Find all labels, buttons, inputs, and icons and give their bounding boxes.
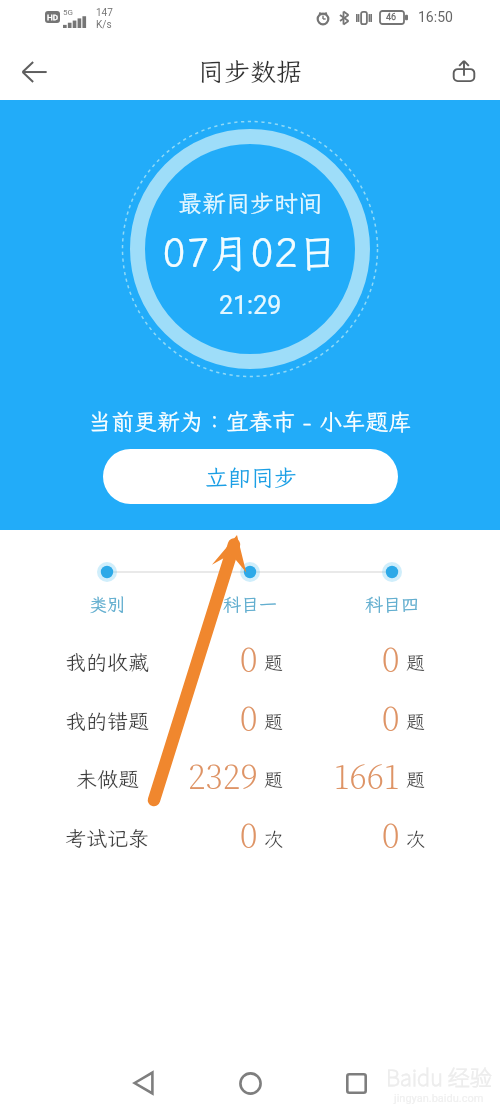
staticText: 同步数据 — [198, 54, 303, 88]
staticText: 2329 — [188, 752, 258, 798]
staticText: 当前更新为：宜春市 - 小车题库 — [88, 406, 412, 436]
staticText: 未做题 — [76, 765, 139, 793]
staticText: 类别 — [89, 592, 125, 616]
staticText: 我的错题 — [65, 707, 149, 735]
staticText: 46 — [386, 12, 397, 23]
staticText: 次 — [264, 826, 284, 851]
staticText: Baidu 经验 — [386, 1060, 492, 1092]
staticText: 题 — [406, 709, 426, 734]
staticText: 科目一 — [223, 592, 277, 616]
staticText: 0 — [382, 694, 400, 740]
button[interactable]: Back — [10, 47, 58, 95]
staticText: 07月02日 — [162, 226, 338, 279]
staticText: 16:50 — [418, 9, 453, 25]
staticText: 题 — [264, 767, 284, 792]
staticText: 题 — [406, 767, 426, 792]
staticText: 1661 — [334, 752, 400, 798]
staticText: 0 — [240, 694, 258, 740]
button[interactable]: Home — [222, 1055, 278, 1111]
staticText: K/s — [96, 19, 112, 31]
staticText: 科目四 — [365, 592, 419, 616]
staticText: 题 — [264, 650, 284, 675]
staticText: jingyan.baidu.com — [394, 1092, 484, 1105]
button[interactable]: Share — [442, 49, 486, 93]
staticText: 0 — [382, 811, 400, 857]
staticText: HD — [47, 13, 58, 22]
staticText: 0 — [240, 811, 258, 857]
button[interactable]: Back — [115, 1055, 171, 1111]
staticText: 考试记录 — [65, 824, 149, 852]
staticText: 0 — [240, 635, 258, 681]
button[interactable]: 立即同步 — [103, 449, 398, 504]
staticText: 0 — [382, 635, 400, 681]
staticText: 5G — [63, 8, 73, 17]
staticText: 题 — [264, 709, 284, 734]
button[interactable]: Recents — [328, 1055, 384, 1111]
staticText: 我的收藏 — [65, 648, 149, 676]
staticText: 题 — [406, 650, 426, 675]
staticText: 21:29 — [219, 291, 282, 320]
staticText: 147 — [96, 7, 113, 19]
staticText: 立即同步 — [205, 462, 297, 492]
staticText: 次 — [406, 826, 426, 851]
staticText: 最新同步时间 — [178, 187, 322, 219]
